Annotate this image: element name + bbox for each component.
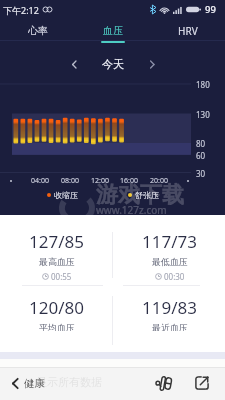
staticText: 今天 — [102, 57, 124, 71]
staticText: 119/83 — [142, 296, 197, 319]
staticText: 00:55 — [51, 271, 72, 282]
staticText: 平均血压 — [39, 322, 75, 331]
staticText: 健康 — [24, 377, 45, 390]
staticText: 舒张压 — [135, 190, 159, 200]
button[interactable]: Previous day — [63, 54, 85, 74]
button[interactable]: Blood pressure sensor — [151, 370, 177, 396]
staticText: 80 — [196, 138, 206, 149]
staticText: 12:00 — [91, 176, 109, 186]
staticText: 99 — [205, 3, 216, 16]
staticText: 血压 — [103, 24, 123, 37]
button[interactable]: 119/83 — [113, 291, 225, 331]
staticText: 30 — [196, 168, 206, 179]
button[interactable]: 120/80 — [0, 291, 113, 331]
staticText: 120/80 — [29, 296, 84, 319]
staticText: 117/73 — [142, 230, 197, 253]
staticText: 游戏下载 — [96, 181, 184, 209]
staticText: 130 — [196, 109, 210, 120]
button[interactable]: Next day — [141, 54, 163, 74]
staticText: www.127z.com — [96, 203, 167, 217]
staticText: 最低血压 — [152, 256, 188, 267]
button[interactable]: Share — [189, 370, 215, 396]
staticText: 60 — [196, 150, 206, 161]
staticText: 127/85 — [29, 230, 84, 253]
staticText: 180 — [196, 79, 210, 90]
staticText: 16:00 — [120, 176, 138, 186]
staticText: 下午2:12 — [3, 4, 39, 16]
staticText: 08:00 — [61, 176, 79, 186]
staticText: 20:00 — [150, 176, 168, 186]
staticText: 00:30 — [164, 271, 185, 282]
staticText: 最近血压 — [152, 322, 188, 331]
staticText: 最高血压 — [39, 256, 75, 267]
button[interactable]: HRV — [150, 19, 225, 45]
staticText: 心率 — [28, 24, 48, 37]
staticText: 收缩压 — [54, 190, 78, 200]
staticText: HRV — [178, 24, 198, 38]
button[interactable]: 健康 — [12, 371, 45, 396]
button[interactable]: 117/73 — [113, 225, 225, 283]
staticText: 显示所有数据 — [36, 375, 102, 389]
staticText: 04:00 — [31, 176, 49, 186]
button[interactable]: 血压 — [75, 19, 150, 45]
button[interactable]: 127/85 — [0, 225, 113, 283]
button[interactable]: 心率 — [0, 19, 75, 45]
